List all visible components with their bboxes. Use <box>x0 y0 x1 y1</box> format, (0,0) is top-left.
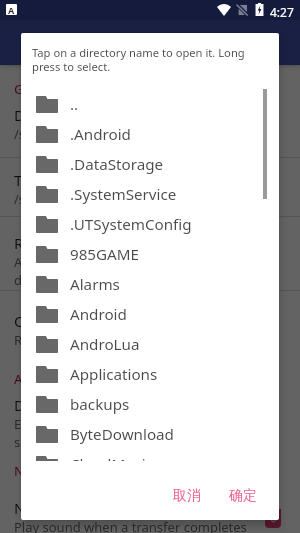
button[interactable]: Connections <box>14 311 284 349</box>
staticText: 985GAME <box>70 244 140 265</box>
staticText: /storage/emulated/0/Download <box>14 125 208 143</box>
button[interactable]: Notifications <box>14 462 94 480</box>
staticText: Play sound when a transfer completes <box>14 518 247 533</box>
staticText: Display <box>14 395 66 415</box>
button[interactable]: backups <box>21 389 279 419</box>
staticText: Notifications <box>14 462 94 480</box>
staticText: Android <box>70 304 127 325</box>
button[interactable]: Collapse <box>265 509 281 528</box>
staticText: Remember paired devices <box>14 331 173 349</box>
staticText: /system default <box>14 190 109 208</box>
staticText: A <box>8 4 15 15</box>
button[interactable]: Android <box>21 299 279 329</box>
staticText: Download directory <box>14 105 153 125</box>
button[interactable]: Theme <box>14 170 284 208</box>
staticText: .SystemService <box>70 184 177 205</box>
button[interactable]: Alarms <box>21 269 279 299</box>
staticText: AndroLua <box>70 334 140 355</box>
staticText: Tap on a directory name to open it. Long… <box>32 45 262 74</box>
staticText: 4:27 <box>270 4 294 20</box>
staticText: 确定 <box>229 487 257 505</box>
button[interactable]: ByteDownload <box>21 419 279 449</box>
button[interactable]: .Android <box>21 119 279 149</box>
staticText: 取消 <box>173 487 201 505</box>
staticText: Receive files <box>14 233 100 253</box>
staticText: Notification sound <box>14 498 144 518</box>
button[interactable]: .SystemService <box>21 179 279 209</box>
button[interactable]: Receive files <box>14 233 284 289</box>
button[interactable]: 985GAME <box>21 239 279 269</box>
button[interactable]: .UTSystemConfig <box>21 209 279 239</box>
staticText: General <box>14 80 63 98</box>
staticText: downloads <box>14 271 81 289</box>
button[interactable]: Appearance <box>14 370 89 388</box>
staticText: Theme <box>14 170 63 190</box>
button[interactable]: General <box>14 80 63 98</box>
staticText: ByteDownload <box>70 424 174 445</box>
button[interactable]: .. <box>21 89 279 119</box>
staticText: .Android <box>70 124 131 145</box>
staticText: .UTSystemConfig <box>70 214 192 235</box>
button[interactable]: Notification sound <box>14 498 284 533</box>
button[interactable]: 确定 <box>221 482 265 510</box>
staticText: backups <box>70 394 130 415</box>
button[interactable]: .DataStorage <box>21 149 279 179</box>
button[interactable]: 取消 <box>165 482 209 510</box>
button[interactable]: Download directory <box>14 105 284 143</box>
staticText: Alarms <box>70 274 120 295</box>
staticText: CloudMusic <box>70 454 154 461</box>
staticText: .. <box>70 94 79 115</box>
button[interactable]: Applications <box>21 359 279 389</box>
button[interactable]: CloudMusic <box>21 449 279 461</box>
button[interactable]: Display <box>14 395 284 451</box>
staticText: sunset <box>14 433 55 451</box>
staticText: Appearance <box>14 370 89 388</box>
staticText: Applications <box>70 364 158 385</box>
staticText: Ask before accepting <box>14 253 142 271</box>
staticText: Connections <box>14 311 102 331</box>
staticText: Enable dark theme at <box>14 415 145 433</box>
staticText: .DataStorage <box>70 154 164 175</box>
button[interactable]: AndroLua <box>21 329 279 359</box>
